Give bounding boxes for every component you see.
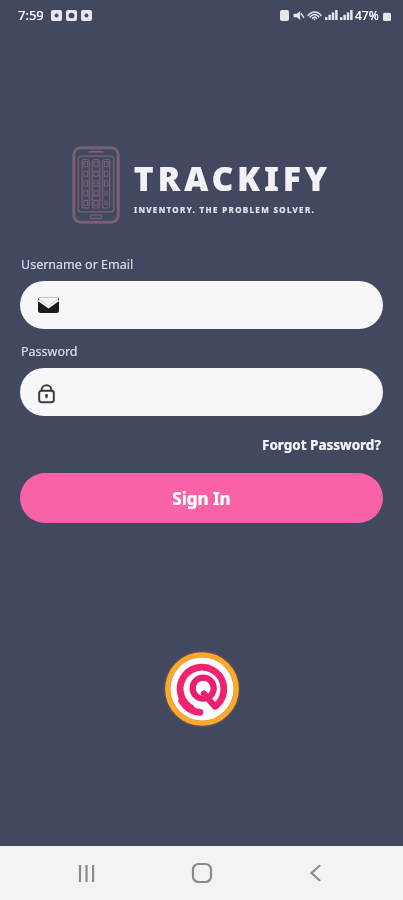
button[interactable]: Email [20, 281, 383, 329]
other: Email [38, 297, 59, 313]
button[interactable]: Recent apps [59, 846, 115, 900]
button[interactable]: Home [174, 846, 230, 900]
staticText: 7:59 [18, 6, 44, 24]
button[interactable]: Sign In [20, 473, 383, 523]
button[interactable]: Forgot Password? [260, 434, 383, 456]
other: App logo [163, 650, 241, 728]
button[interactable]: Back [288, 846, 344, 900]
staticText: Password [21, 343, 78, 360]
other: Password [38, 382, 55, 403]
staticText: INVENTORY. THE PROBLEM SOLVER. [134, 204, 316, 215]
staticText: Forgot Password? [262, 436, 381, 454]
staticText: TRACKIFY [134, 156, 332, 201]
staticText: Sign In [172, 487, 231, 510]
staticText: 47% [355, 7, 379, 23]
button[interactable]: Password [20, 368, 383, 416]
staticText: Username or Email [21, 256, 134, 273]
